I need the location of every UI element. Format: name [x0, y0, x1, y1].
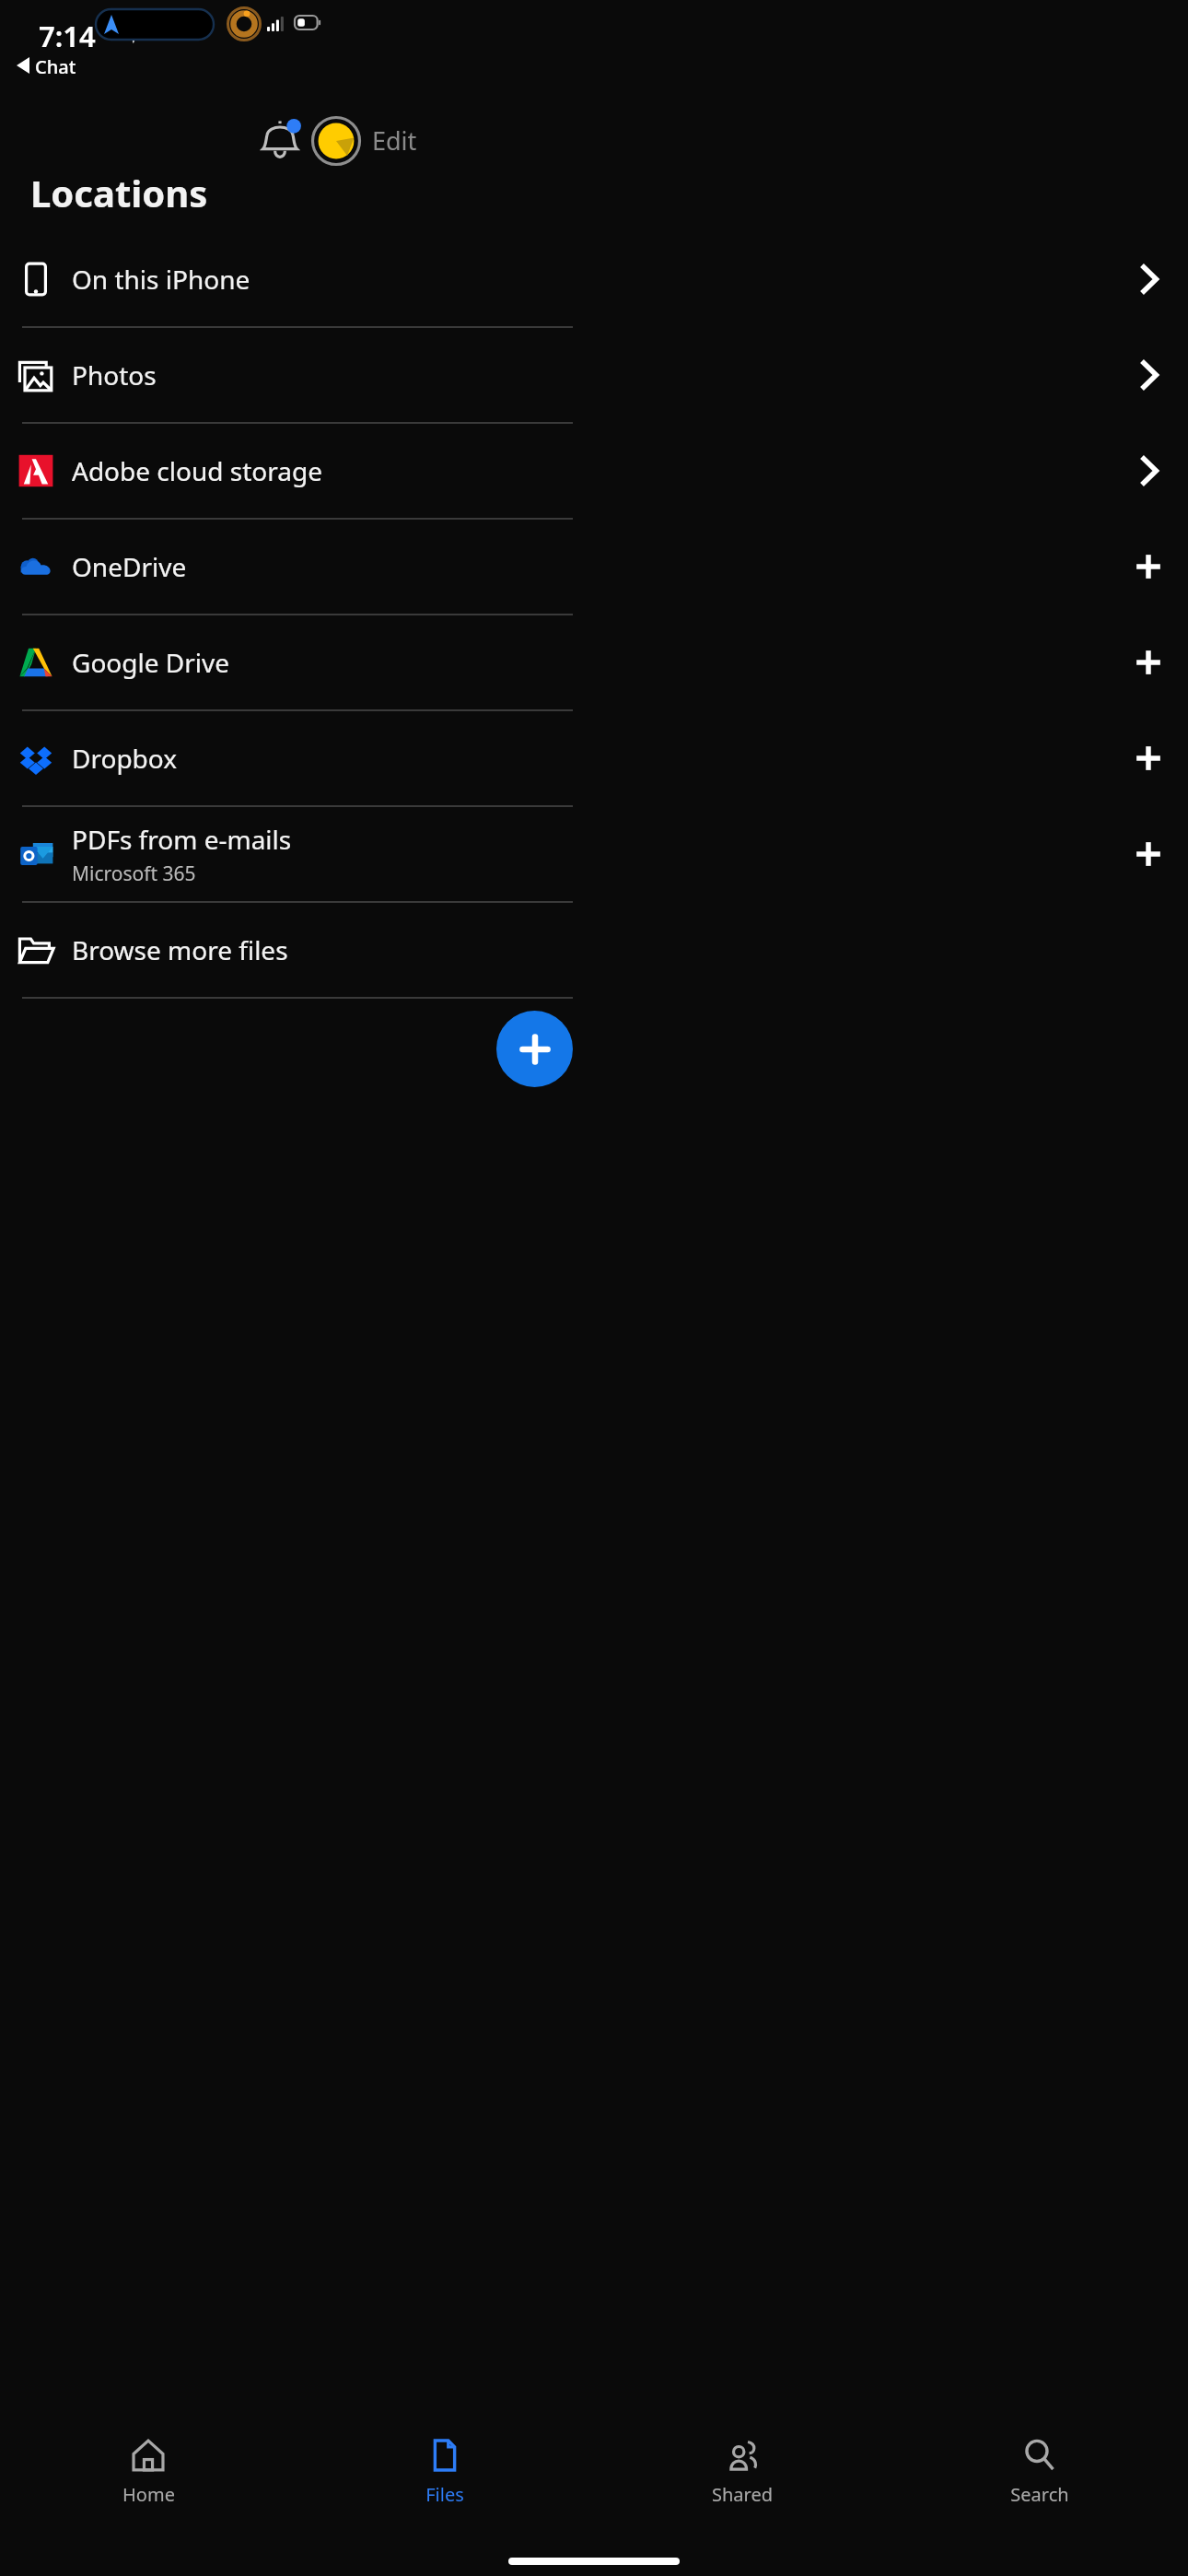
button[interactable]: On this iPhone	[0, 232, 1188, 326]
button[interactable]: Browse more files	[0, 903, 1188, 997]
staticText: Microsoft 365	[72, 861, 196, 887]
staticText: Files	[425, 2482, 464, 2507]
staticText: Browse more files	[72, 932, 288, 967]
button[interactable]: Adobe cloud storage	[0, 424, 1188, 518]
staticText: Chat	[35, 54, 76, 79]
button[interactable]: Home	[0, 2430, 297, 2534]
staticText: Home	[122, 2482, 175, 2507]
staticText: OneDrive	[72, 549, 187, 584]
staticText: Dropbox	[72, 741, 178, 776]
button[interactable]: Search	[891, 2430, 1188, 2534]
button[interactable]: Shared	[593, 2430, 891, 2534]
button[interactable]: Notifications	[255, 116, 305, 166]
button[interactable]: Add	[496, 1011, 573, 1087]
staticText: Shared	[712, 2482, 773, 2507]
staticText: Photos	[72, 357, 157, 392]
staticText: Adobe cloud storage	[72, 453, 322, 488]
staticText: Locations	[30, 168, 208, 217]
staticText: Google Drive	[72, 645, 230, 680]
button[interactable]: Account	[311, 116, 361, 166]
button[interactable]: Photos	[0, 328, 1188, 422]
button[interactable]: Files	[297, 2430, 593, 2534]
button[interactable]: PDFs from e-mails	[0, 807, 1188, 901]
staticText: Search	[1010, 2482, 1069, 2507]
staticText: 7:14	[39, 17, 96, 55]
button[interactable]: Dropbox	[0, 711, 1188, 805]
staticText: PDFs from e-mails	[72, 822, 292, 857]
staticText: On this iPhone	[72, 262, 250, 297]
button[interactable]: Google Drive	[0, 615, 1188, 709]
staticText: Edit	[372, 123, 417, 158]
button[interactable]: Edit	[372, 123, 417, 158]
button[interactable]: OneDrive	[0, 520, 1188, 614]
